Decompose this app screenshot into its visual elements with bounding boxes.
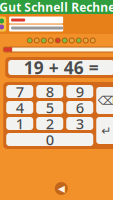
staticText: Gut Schnell Rechnen — [0, 0, 113, 15]
staticText: 2 — [46, 114, 54, 133]
button[interactable]: Delete — [96, 87, 113, 114]
staticText: ⌫ — [98, 94, 113, 107]
button[interactable]: 0 — [6, 133, 93, 146]
staticText: ↵ — [101, 124, 111, 137]
staticText: 7 — [16, 82, 24, 101]
staticText: 6 — [76, 98, 84, 117]
staticText: 19 + 46 = — [24, 56, 99, 79]
button[interactable]: 6 — [66, 101, 93, 114]
button[interactable]: 7 — [6, 85, 33, 98]
staticText: 0 — [46, 130, 54, 149]
button[interactable]: Enter — [96, 117, 113, 144]
staticText: 1 — [16, 114, 24, 133]
button[interactable]: 2 — [36, 117, 63, 130]
staticText: 5 — [46, 98, 54, 117]
button[interactable]: 3 — [66, 117, 93, 130]
button[interactable]: Back — [55, 182, 68, 195]
staticText: ◀ — [58, 183, 65, 194]
button[interactable]: 8 — [36, 85, 63, 98]
staticText: 8 — [46, 82, 54, 101]
staticText: 4 — [16, 98, 24, 117]
staticText: 9 — [76, 82, 84, 101]
button[interactable]: 5 — [36, 101, 63, 114]
button[interactable]: 1 — [6, 117, 33, 130]
button[interactable]: 4 — [6, 101, 33, 114]
staticText: 3 — [76, 114, 84, 133]
button[interactable]: 9 — [66, 85, 93, 98]
